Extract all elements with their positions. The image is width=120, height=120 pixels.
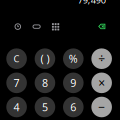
staticText: ÷ [98, 51, 105, 67]
button[interactable]: ÷ [91, 48, 112, 69]
button[interactable]: % [63, 48, 84, 69]
button[interactable]: Basic calculator [33, 23, 41, 30]
button[interactable]: 7 [6, 72, 27, 93]
button[interactable]: × [91, 72, 112, 93]
button[interactable]: ( ) [35, 48, 55, 69]
staticText: 5 [42, 100, 48, 114]
button[interactable]: History [14, 23, 21, 30]
staticText: 4 [14, 100, 20, 114]
button[interactable]: C [6, 48, 27, 69]
staticText: × [98, 75, 105, 91]
button[interactable]: 5 [35, 97, 55, 117]
staticText: 7 [14, 76, 20, 90]
button[interactable]: 9 [63, 72, 84, 93]
staticText: 6 [70, 100, 76, 114]
button[interactable]: 8 [35, 72, 55, 93]
staticText: ( ) [40, 52, 49, 66]
staticText: C [14, 52, 20, 65]
button[interactable]: − [91, 97, 112, 117]
staticText: 79,490 [78, 0, 106, 6]
staticText: 8 [42, 76, 48, 90]
staticText: % [69, 52, 78, 66]
staticText: − [98, 99, 105, 115]
button[interactable]: 4 [6, 97, 27, 117]
button[interactable]: Keypad [51, 23, 60, 31]
staticText: 9 [70, 76, 76, 90]
button[interactable]: 6 [63, 97, 84, 117]
button[interactable]: Delete [98, 24, 106, 29]
